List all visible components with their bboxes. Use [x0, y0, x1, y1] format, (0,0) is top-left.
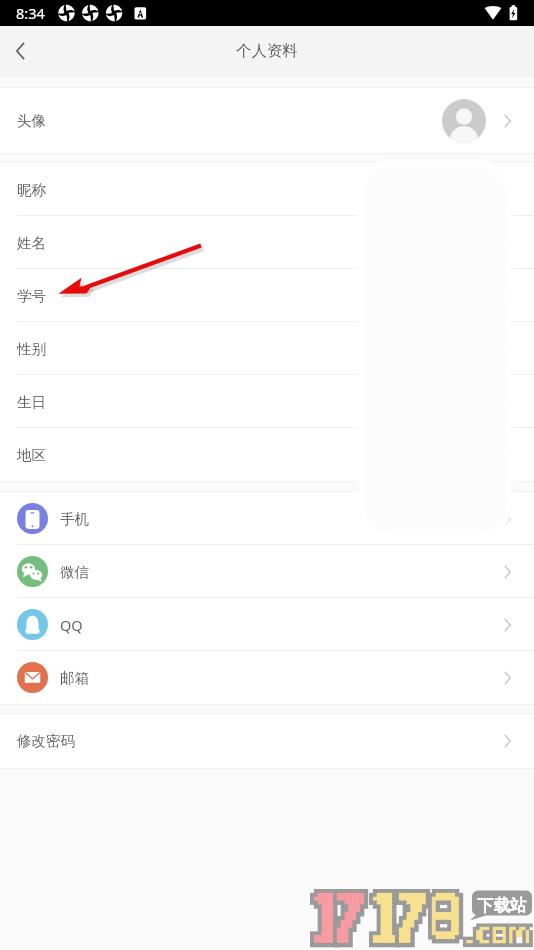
staticText: 手机: [60, 510, 89, 528]
staticText: 8:34: [16, 3, 45, 23]
staticText: QQ: [60, 615, 83, 635]
button[interactable]: 地区: [0, 428, 534, 481]
button[interactable]: 微信: [0, 545, 534, 598]
button[interactable]: 昵称: [0, 163, 534, 216]
button[interactable]: 邮箱: [0, 651, 534, 704]
button[interactable]: 修改密码: [0, 714, 534, 768]
staticText: 邮箱: [60, 669, 89, 687]
staticText: 头像: [17, 112, 46, 130]
staticText: 学号: [17, 287, 46, 305]
button[interactable]: 学号: [0, 269, 534, 322]
staticText: 微信: [60, 563, 89, 581]
staticText: 生日: [17, 393, 46, 411]
button[interactable]: 性别: [0, 322, 534, 375]
staticText: 修改密码: [17, 732, 75, 750]
button[interactable]: 生日: [0, 375, 534, 428]
button[interactable]: Back: [0, 31, 40, 71]
staticText: 地区: [17, 446, 46, 464]
button[interactable]: 手机: [0, 492, 534, 545]
staticText: 姓名: [17, 234, 46, 252]
staticText: 性别: [17, 340, 46, 358]
button[interactable]: 头像: [0, 88, 534, 153]
staticText: 下载站: [477, 895, 527, 916]
staticText: 个人资料: [236, 41, 298, 61]
button[interactable]: QQ: [0, 598, 534, 651]
staticText: 昵称: [17, 181, 46, 199]
button[interactable]: 姓名: [0, 216, 534, 269]
